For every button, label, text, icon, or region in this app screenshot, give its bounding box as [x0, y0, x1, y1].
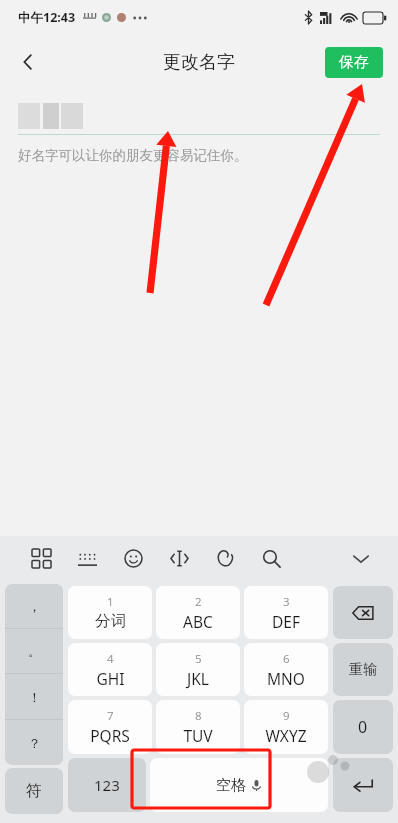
button[interactable]: 1 [68, 586, 152, 639]
staticText: DEF [272, 611, 300, 632]
button[interactable]: 2 [156, 586, 240, 639]
staticText: 2 [195, 594, 202, 610]
staticText: GHI [96, 668, 125, 689]
button[interactable]: 5 [156, 643, 240, 696]
staticText: 中午12:43 [18, 9, 76, 26]
button[interactable]: 保存 [325, 47, 383, 78]
button[interactable]: 3 [244, 586, 328, 639]
button[interactable]: ？ [5, 720, 63, 765]
staticText: 0 [358, 716, 368, 738]
staticText: 保存 [339, 53, 369, 72]
staticText: WXYZ [265, 725, 307, 746]
staticText: 6 [283, 651, 290, 667]
button[interactable]: 123 [68, 758, 146, 812]
staticText: 4 [107, 651, 114, 667]
button[interactable]: Emoji [110, 536, 156, 581]
button[interactable]: 4 [68, 643, 152, 696]
button[interactable]: Apps [18, 536, 64, 581]
staticText: 5 [195, 651, 202, 667]
staticText: ？ [28, 735, 41, 751]
button[interactable]: Delete [333, 586, 393, 639]
button[interactable]: Clipboard [156, 536, 202, 581]
button[interactable]: 空格 [150, 758, 328, 812]
staticText: 8 [195, 708, 202, 724]
staticText: 重输 [349, 661, 377, 679]
button[interactable]: ， [5, 584, 63, 628]
staticText: TUV [183, 725, 213, 746]
staticText: 分词 [95, 611, 126, 631]
staticText: 。 [28, 643, 41, 659]
button[interactable]: Search [248, 536, 294, 581]
staticText: 好名字可以让你的朋友更容易记住你。 [18, 147, 248, 164]
button[interactable]: 9 [244, 700, 328, 754]
staticText: PQRS [90, 725, 130, 746]
button[interactable]: 。 [5, 629, 63, 673]
staticText: ！ [28, 689, 41, 705]
staticText: 123 [94, 775, 120, 795]
staticText: 符 [26, 781, 42, 801]
button[interactable]: 符 [5, 768, 63, 814]
button[interactable]: 重输 [333, 643, 393, 696]
staticText: 9 [283, 708, 290, 724]
staticText: ， [28, 598, 41, 614]
button[interactable]: 7 [68, 700, 152, 754]
staticText: 更改名字 [163, 51, 235, 74]
staticText: MNO [267, 668, 305, 689]
button[interactable]: Enter [333, 758, 393, 812]
staticText: 3 [283, 594, 290, 610]
button[interactable]: Tools [202, 536, 248, 581]
button[interactable]: Hide keyboard [340, 538, 382, 580]
button[interactable]: 8 [156, 700, 240, 754]
button[interactable]: 0 [333, 700, 393, 754]
staticText: 空格 [216, 776, 246, 795]
staticText: JKL [187, 668, 209, 689]
button[interactable]: Back [6, 40, 50, 84]
button[interactable]: 6 [244, 643, 328, 696]
button[interactable]: ！ [5, 674, 63, 719]
button[interactable]: Keyboard [64, 536, 110, 581]
staticText: 7 [107, 708, 114, 724]
staticText: 1 [107, 594, 114, 610]
staticText: ABC [183, 611, 213, 632]
